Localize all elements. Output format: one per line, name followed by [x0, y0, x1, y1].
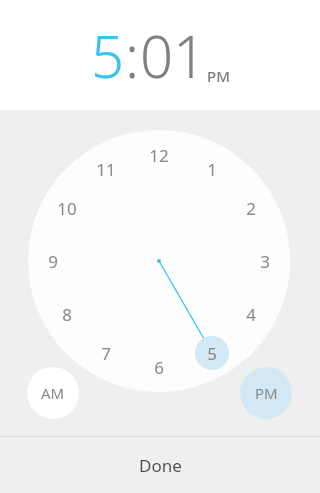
staticText: 12 — [149, 144, 169, 167]
button[interactable]: 5 — [195, 336, 229, 370]
staticText: 4 — [246, 303, 256, 326]
staticText: AM — [41, 383, 65, 403]
button[interactable]: 8 — [50, 297, 84, 331]
button[interactable]: 12 — [142, 138, 176, 172]
button[interactable]: 3 — [248, 244, 282, 278]
button[interactable]: 9 — [36, 244, 70, 278]
staticText: 2 — [246, 197, 256, 220]
staticText: 11 — [96, 158, 116, 181]
button[interactable]: 10 — [50, 191, 84, 225]
staticText: : — [125, 16, 140, 95]
button[interactable]: 2 — [234, 191, 268, 225]
button[interactable]: 7 — [89, 336, 123, 370]
button[interactable]: AM — [27, 367, 79, 419]
button[interactable]: 11 — [89, 152, 123, 186]
button[interactable]: 1 — [195, 152, 229, 186]
staticText: 9 — [48, 250, 58, 273]
staticText: PM — [207, 66, 230, 86]
staticText: 10 — [57, 197, 77, 220]
button[interactable]: 5 — [91, 16, 125, 95]
staticText: 7 — [101, 342, 111, 365]
staticText: 5 — [207, 342, 217, 365]
button[interactable]: PM — [207, 66, 230, 86]
staticText: 8 — [62, 303, 72, 326]
staticText: Done — [139, 454, 182, 477]
staticText: 3 — [260, 250, 270, 273]
button[interactable]: Done — [0, 437, 320, 493]
button[interactable]: PM — [240, 367, 292, 419]
staticText: 6 — [154, 356, 164, 379]
button[interactable]: 01 — [140, 16, 207, 95]
staticText: PM — [255, 383, 278, 403]
button[interactable]: 6 — [142, 350, 176, 384]
staticText: 1 — [207, 158, 217, 181]
button[interactable]: 4 — [234, 297, 268, 331]
